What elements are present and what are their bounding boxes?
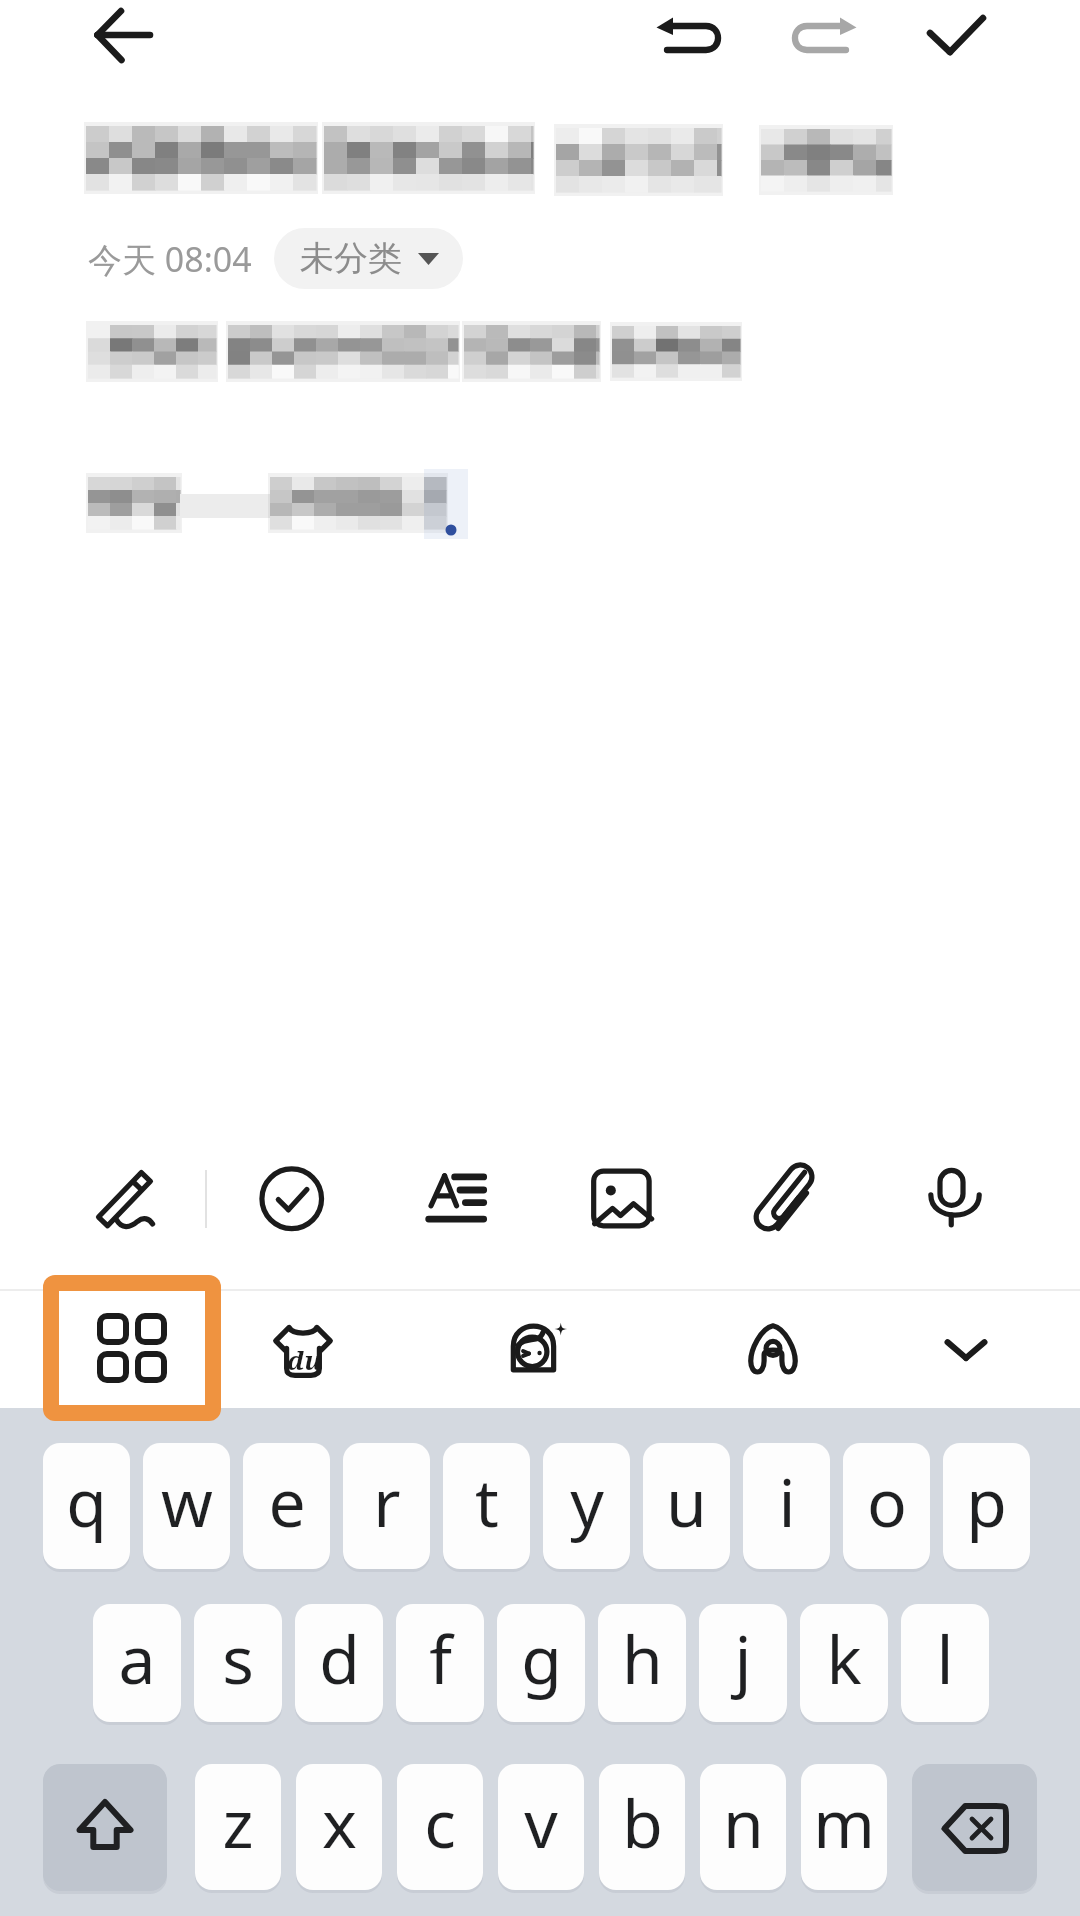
staticText: s [222, 1613, 254, 1703]
button[interactable]: h [598, 1604, 686, 1722]
staticText: k [826, 1613, 862, 1703]
staticText: g [521, 1613, 562, 1703]
staticText: f [429, 1613, 452, 1703]
button[interactable]: u [643, 1443, 730, 1569]
button[interactable]: Back [80, 0, 168, 76]
staticText: w [161, 1456, 213, 1546]
button[interactable]: s [194, 1604, 282, 1722]
button[interactable]: n [700, 1764, 786, 1890]
button[interactable]: Shift [43, 1764, 167, 1891]
button[interactable]: Redo [780, 0, 868, 76]
staticText: l [936, 1613, 954, 1703]
button[interactable]: j [699, 1604, 787, 1722]
button[interactable]: Handwriting [85, 1158, 169, 1242]
button[interactable]: Voice [909, 1158, 993, 1242]
button[interactable]: Collapse keyboard [924, 1306, 1008, 1390]
staticText: r [373, 1456, 401, 1546]
button[interactable]: t [443, 1443, 530, 1569]
button[interactable]: m [801, 1764, 887, 1890]
staticText: q [66, 1456, 107, 1546]
button[interactable]: Done [912, 0, 1000, 76]
staticText: v [524, 1777, 558, 1867]
button[interactable]: Image [581, 1158, 665, 1242]
staticText: i [778, 1456, 796, 1546]
button[interactable]: Emoji [494, 1306, 578, 1390]
button[interactable]: x [296, 1764, 382, 1890]
staticText: j [734, 1613, 752, 1703]
button[interactable]: i [743, 1443, 830, 1569]
button[interactable]: w [143, 1443, 230, 1569]
button[interactable]: a [93, 1604, 181, 1722]
staticText: n [723, 1777, 764, 1867]
button[interactable]: z [195, 1764, 281, 1890]
staticText: m [813, 1777, 875, 1867]
button[interactable]: e [243, 1443, 330, 1569]
button[interactable]: Checklist [251, 1158, 335, 1242]
staticText: 未分类 [300, 237, 402, 280]
button[interactable]: b [599, 1764, 685, 1890]
button[interactable]: l [901, 1604, 989, 1722]
button[interactable]: Text style [417, 1158, 501, 1242]
staticText: p [966, 1456, 1007, 1546]
staticText: a [118, 1613, 156, 1703]
button[interactable]: v [498, 1764, 584, 1890]
button[interactable]: o [843, 1443, 930, 1569]
staticText: du [287, 1342, 322, 1377]
button[interactable]: Apps [43, 1275, 221, 1421]
staticText: b [622, 1777, 663, 1867]
button[interactable]: 未分类 [274, 228, 463, 289]
button[interactable]: g [497, 1604, 585, 1722]
staticText: d [319, 1613, 360, 1703]
button[interactable]: q [43, 1443, 130, 1569]
button[interactable]: f [396, 1604, 484, 1722]
button[interactable]: p [943, 1443, 1030, 1569]
staticText: u [666, 1456, 707, 1546]
button[interactable]: k [800, 1604, 888, 1722]
button[interactable]: Account [731, 1306, 815, 1390]
staticText: e [268, 1456, 306, 1546]
staticText: z [222, 1777, 254, 1867]
button[interactable]: Backspace [912, 1764, 1037, 1891]
button[interactable]: c [397, 1764, 483, 1890]
staticText: y [570, 1456, 604, 1546]
staticText: x [322, 1777, 357, 1867]
button[interactable]: Stickers [261, 1306, 345, 1390]
staticText: o [867, 1456, 907, 1546]
button[interactable]: r [343, 1443, 430, 1569]
button[interactable]: Undo [645, 0, 733, 76]
staticText: t [475, 1456, 499, 1546]
staticText: c [424, 1777, 456, 1867]
button[interactable]: Attachment [745, 1158, 829, 1242]
staticText: h [622, 1613, 663, 1703]
button[interactable]: d [295, 1604, 383, 1722]
staticText: 今天 08:04 [88, 236, 252, 282]
button[interactable]: y [543, 1443, 630, 1569]
